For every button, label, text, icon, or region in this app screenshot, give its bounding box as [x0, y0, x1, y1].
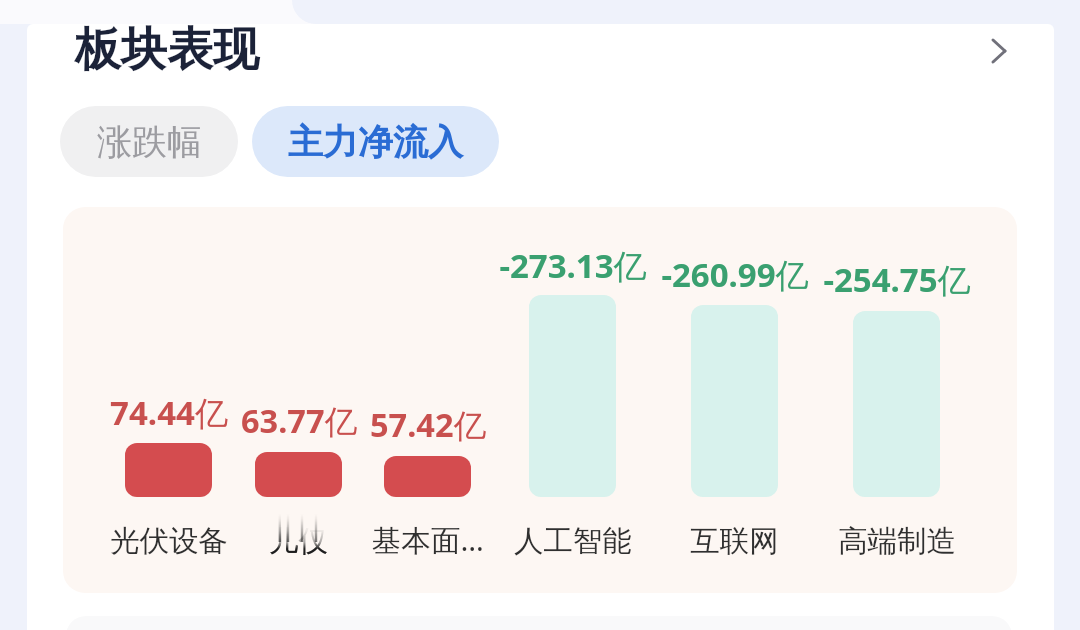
staticText: -273.13亿 [499, 243, 647, 288]
button[interactable]: 板块表现 [63, 16, 1017, 84]
other: Open all sectors [970, 28, 1014, 72]
button[interactable]: 光伏设备 [104, 232, 233, 562]
staticText: 57.42亿 [370, 402, 486, 446]
button[interactable]: 涨跌幅 [60, 106, 238, 177]
staticText: 互联网 [690, 523, 779, 560]
button[interactable] [63, 207, 1017, 593]
button[interactable]: 人工智能 [508, 232, 637, 562]
staticText: 高端制造 [838, 523, 956, 560]
staticText: 涨跌幅 [97, 120, 202, 164]
staticText: 板块表现 [75, 21, 259, 79]
button[interactable]: 主力净流入 [252, 106, 499, 177]
staticText: 儿仅 [269, 523, 328, 560]
staticText: 人工智能 [514, 523, 632, 560]
staticText: 光伏设备 [110, 523, 228, 560]
button[interactable]: 互联网 [670, 232, 799, 562]
staticText: -260.99亿 [661, 252, 809, 297]
button[interactable]: 儿仅 [234, 232, 363, 562]
staticText: 74.44亿 [110, 390, 228, 435]
staticText: 基本面… [372, 519, 484, 559]
staticText: 主力净流入 [288, 120, 463, 164]
staticText: 63.77亿 [241, 398, 357, 442]
button[interactable]: 基本面… [363, 232, 492, 562]
button[interactable]: 高端制造 [832, 232, 961, 562]
staticText: -254.75亿 [823, 257, 971, 302]
